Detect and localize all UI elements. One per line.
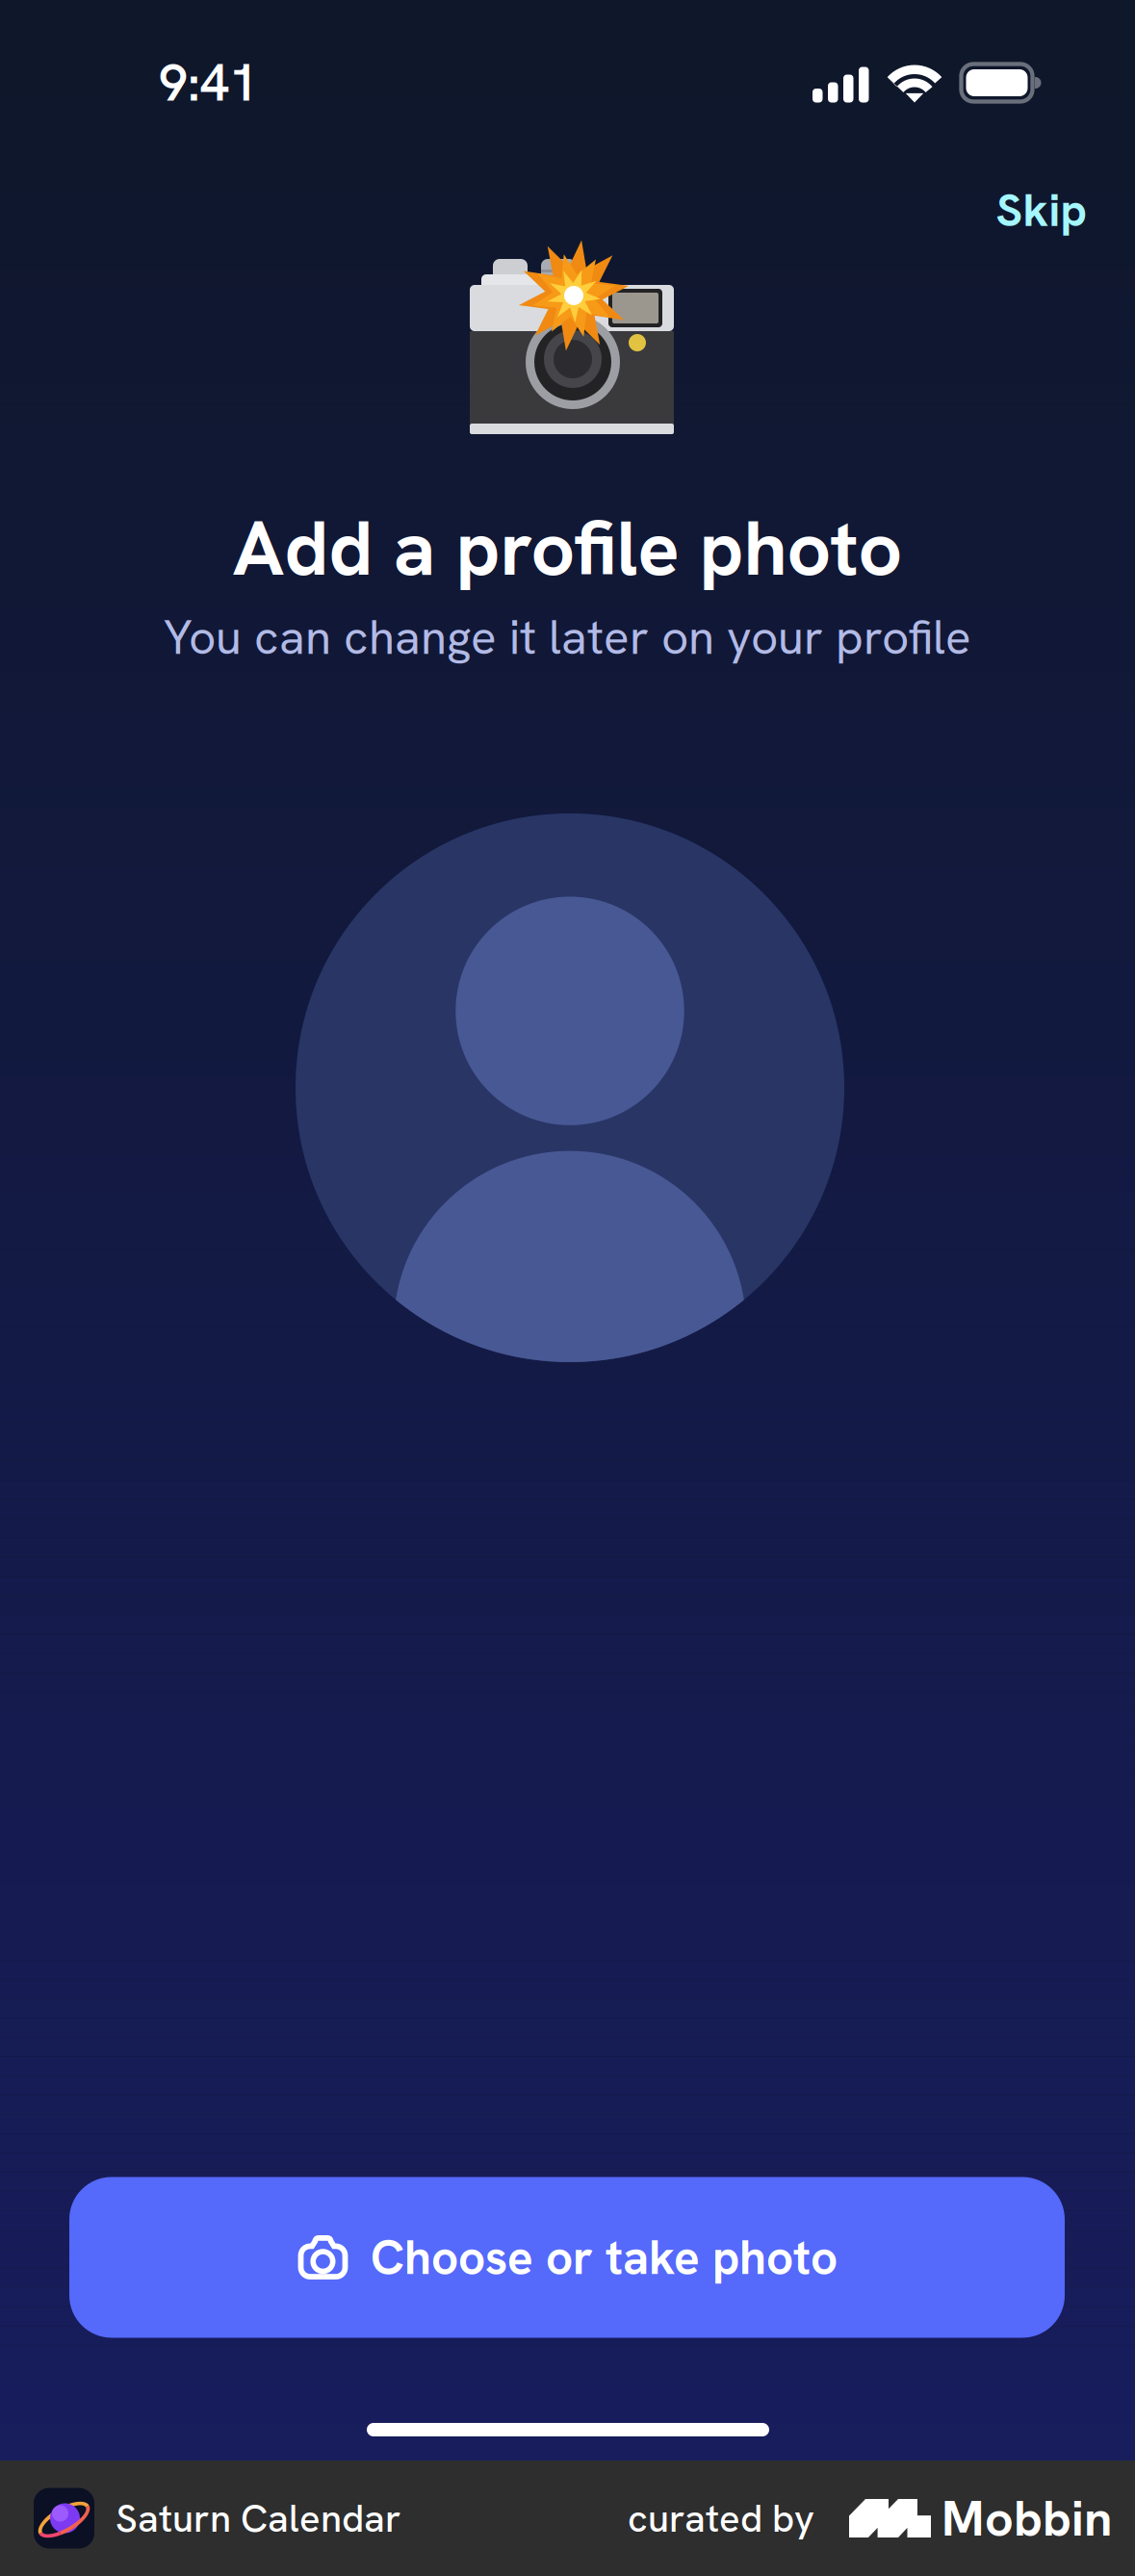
staticText: Choose or take photo [371, 2226, 838, 2288]
staticText: Skip [996, 180, 1087, 240]
staticText: Saturn Calendar [116, 2493, 401, 2543]
button[interactable]: Skip [971, 159, 1112, 261]
staticText: curated by [628, 2493, 814, 2543]
staticText: Add a profile photo [232, 498, 903, 598]
staticText: 9:41 [159, 49, 258, 116]
staticText: Mobbin [942, 2486, 1112, 2551]
button[interactable]: Choose or take photo [69, 2177, 1065, 2338]
staticText: You can change it later on your profile [164, 606, 971, 668]
